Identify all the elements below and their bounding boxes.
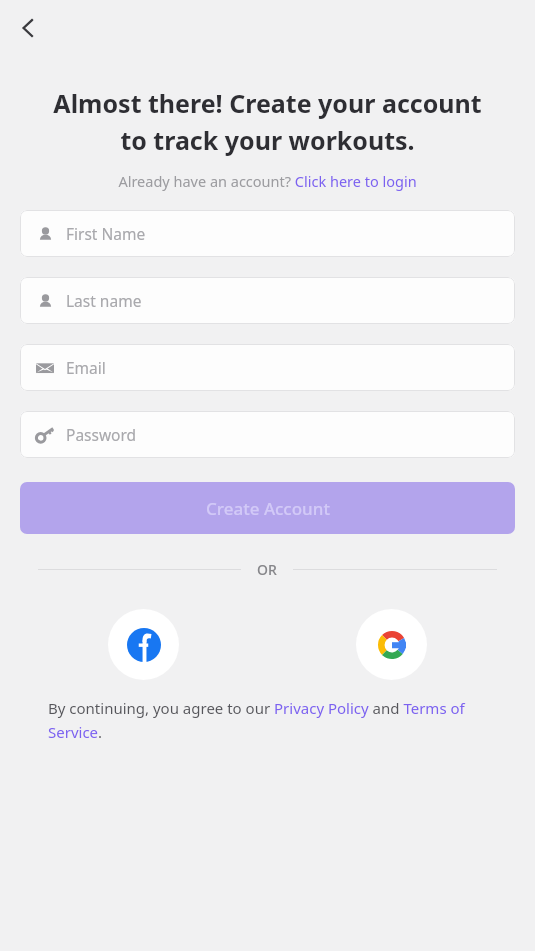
button[interactable]: Back — [6, 6, 50, 50]
button[interactable]: Sign in with Facebook — [108, 609, 179, 680]
button[interactable]: Create Account — [20, 482, 515, 534]
button[interactable]: Last name — [20, 277, 515, 324]
button[interactable]: Already have an account? Click here to l… — [118, 171, 417, 191]
staticText: Last name — [66, 290, 142, 311]
button[interactable]: Password — [20, 411, 515, 458]
button[interactable]: By continuing, you agree to our Privacy … — [48, 698, 487, 742]
staticText: Create Account — [206, 497, 330, 520]
button[interactable]: First Name — [20, 210, 515, 257]
staticText: Almost there! Create your account to tra… — [20, 86, 515, 157]
button[interactable]: Sign in with Google — [356, 609, 427, 680]
staticText: Email — [66, 357, 106, 378]
staticText: First Name — [66, 223, 146, 244]
staticText: OR — [257, 560, 277, 579]
button[interactable]: Email — [20, 344, 515, 391]
staticText: Password — [66, 424, 137, 445]
